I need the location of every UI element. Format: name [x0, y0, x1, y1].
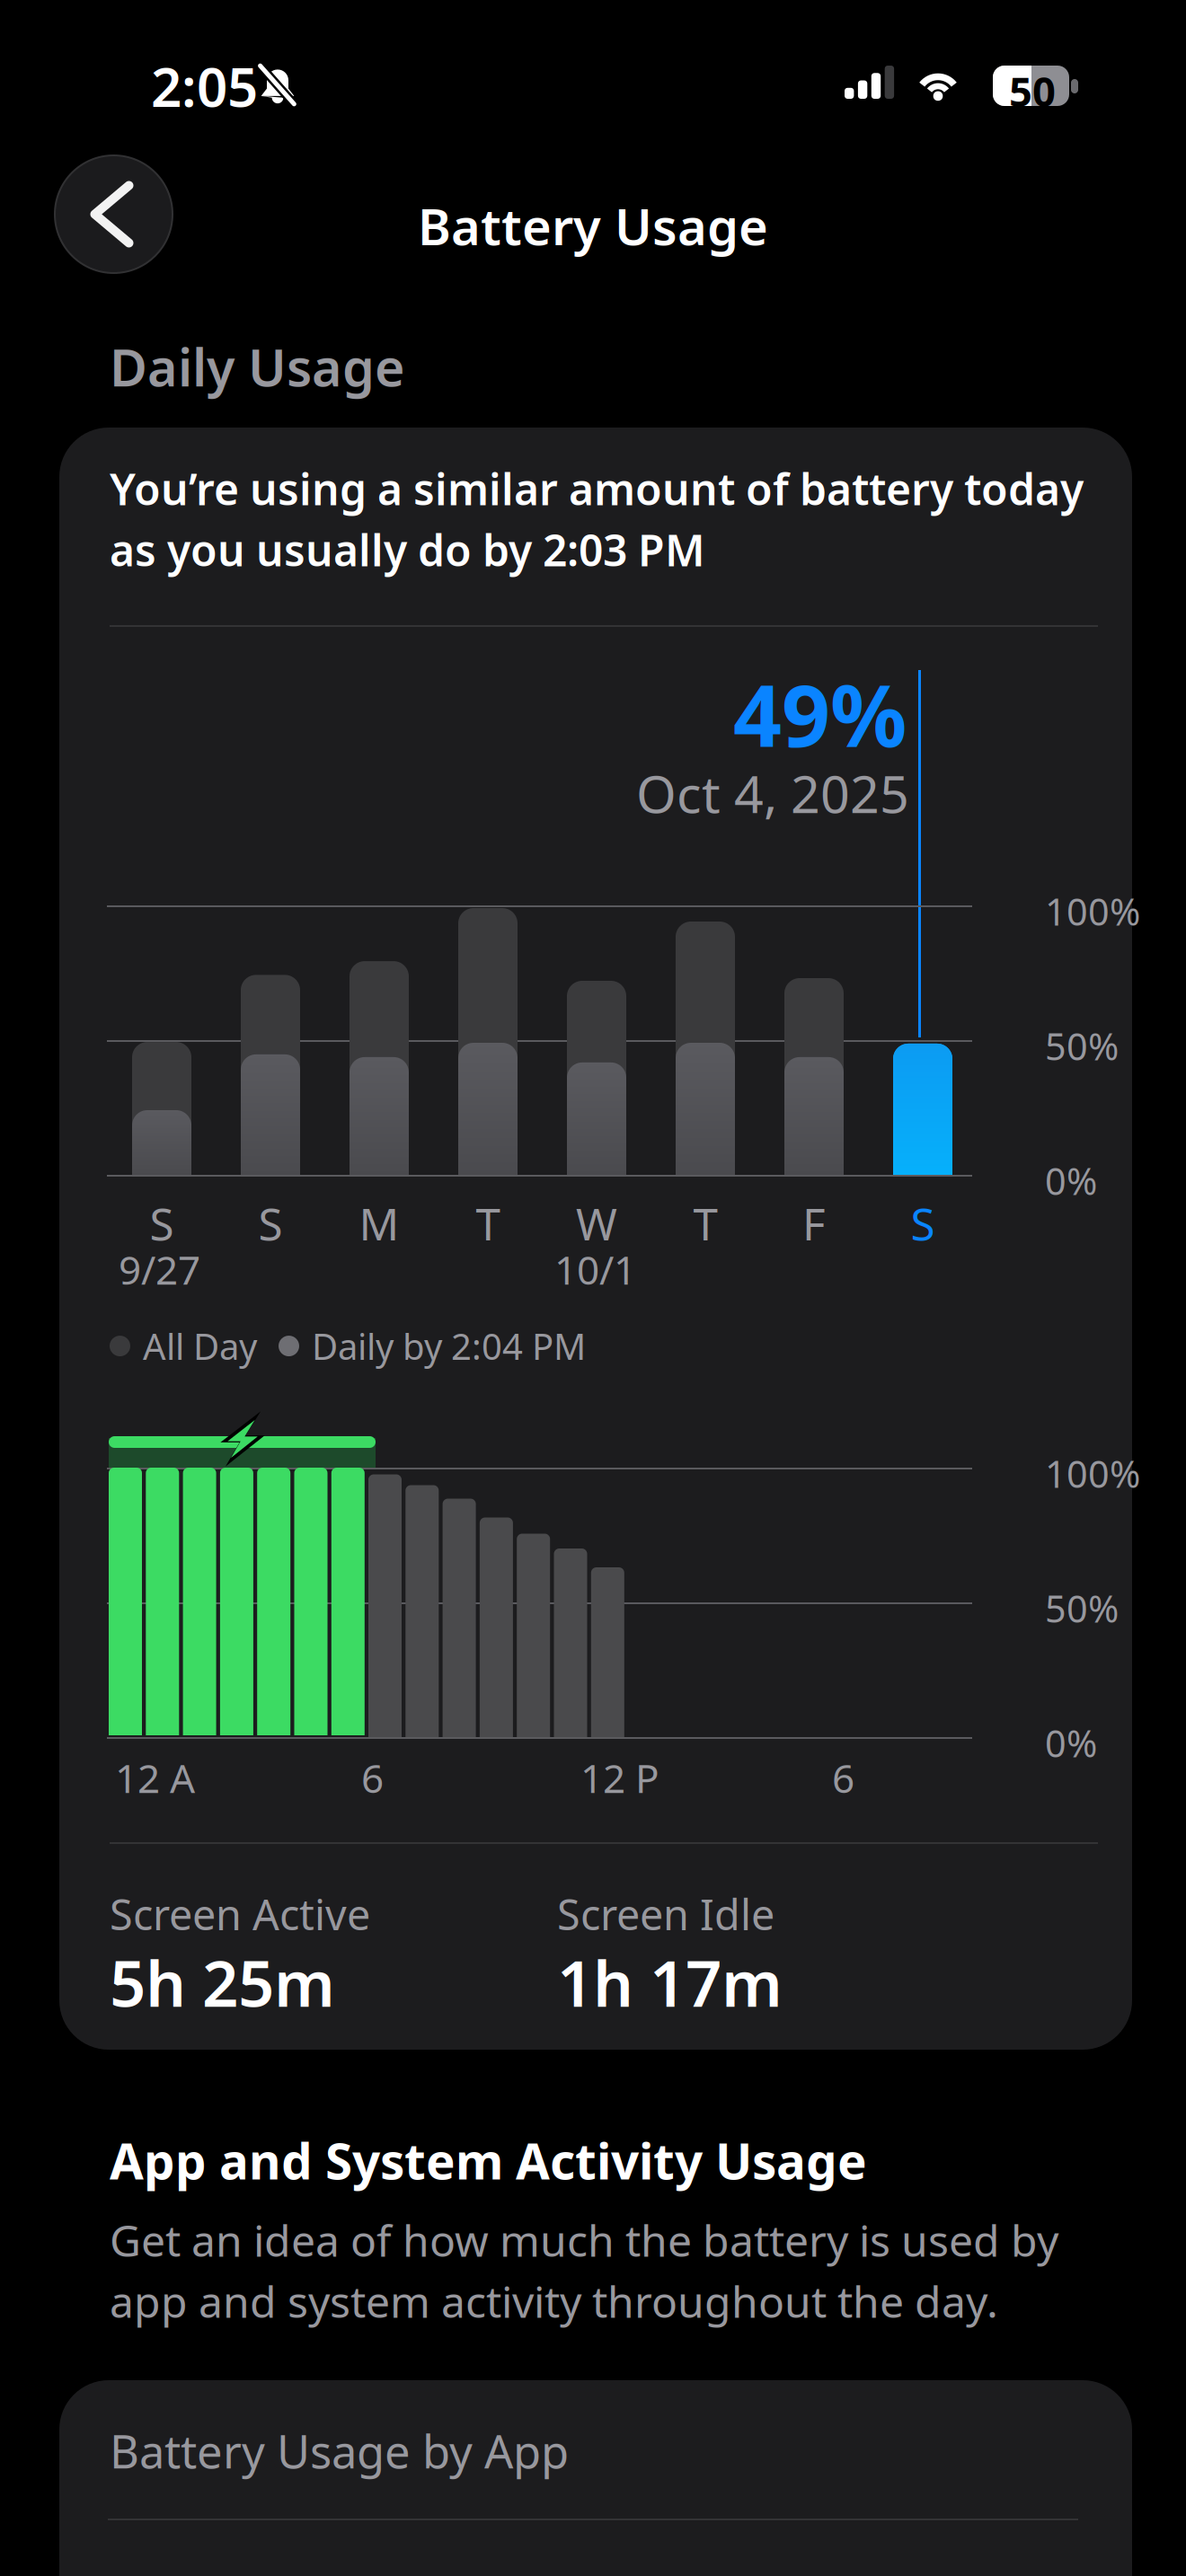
- button[interactable]: Back: [55, 155, 173, 273]
- staticText: 9/27: [119, 1243, 200, 1296]
- staticText: M: [359, 1194, 399, 1253]
- staticText: S: [150, 1194, 174, 1253]
- staticText: 6: [832, 1751, 854, 1804]
- staticText: T: [693, 1194, 717, 1253]
- staticText: S: [258, 1194, 283, 1253]
- staticText: 50: [1009, 64, 1056, 118]
- staticText: W: [576, 1194, 617, 1253]
- staticText: 1h 17m: [557, 1940, 783, 2024]
- staticText: 10/1: [554, 1243, 636, 1296]
- staticText: 0%: [1045, 1156, 1097, 1205]
- staticText: 100%: [1045, 1449, 1140, 1498]
- staticText: 2:05: [151, 50, 258, 122]
- staticText: 0%: [1045, 1718, 1097, 1768]
- staticText: 12 P: [580, 1751, 659, 1804]
- staticText: as you usually do by 2:03 PM: [110, 521, 705, 578]
- staticText: 50%: [1045, 1021, 1119, 1071]
- staticText: Screen Idle: [557, 1886, 774, 1942]
- staticText: You’re using a similar amount of battery…: [110, 460, 1084, 517]
- staticText: app and system activity throughout the d…: [110, 2272, 998, 2330]
- staticText: 49%: [733, 657, 907, 770]
- staticText: App and System Activity Usage: [110, 2128, 867, 2193]
- staticText: All Day: [143, 1322, 257, 1370]
- staticText: F: [802, 1194, 826, 1253]
- staticText: Daily Usage: [110, 332, 405, 401]
- staticText: Oct 4, 2025: [636, 759, 909, 827]
- staticText: 5h 25m: [110, 1940, 335, 2024]
- staticText: Battery Usage by App: [110, 2421, 569, 2481]
- staticText: 50%: [1045, 1584, 1119, 1633]
- staticText: 12 A: [115, 1751, 195, 1804]
- staticText: T: [476, 1194, 500, 1253]
- staticText: 100%: [1045, 887, 1140, 936]
- staticText: Battery Usage: [418, 192, 768, 259]
- staticText: Daily by 2:04 PM: [312, 1322, 586, 1370]
- staticText: S: [911, 1194, 935, 1253]
- staticText: 6: [361, 1751, 384, 1804]
- staticText: Screen Active: [110, 1886, 370, 1942]
- staticText: Get an idea of how much the battery is u…: [110, 2211, 1058, 2269]
